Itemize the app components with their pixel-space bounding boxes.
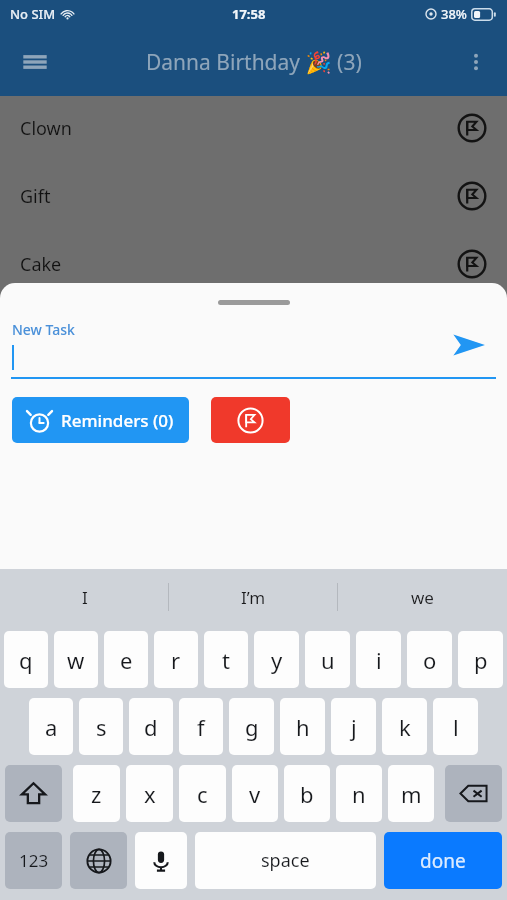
button[interactable]: Reminders (0) <box>12 397 189 443</box>
staticText: l <box>453 712 459 742</box>
button[interactable]: Navigation menu <box>8 35 62 89</box>
staticText: z <box>91 779 102 809</box>
staticText: Cake <box>20 252 62 277</box>
button[interactable]: c <box>179 765 226 822</box>
button[interactable]: w <box>54 631 98 688</box>
staticText: Clown <box>20 116 72 141</box>
staticText: h <box>296 712 310 742</box>
button[interactable]: e <box>104 631 148 688</box>
button[interactable]: done <box>384 832 502 889</box>
button[interactable]: Gift <box>0 178 507 214</box>
button[interactable]: Set priority flag <box>211 397 290 443</box>
staticText: 38% <box>441 5 467 23</box>
staticText: f <box>197 712 205 742</box>
staticText: done <box>420 848 466 874</box>
staticText: j <box>351 712 357 742</box>
button[interactable]: x <box>126 765 173 822</box>
button[interactable]: m <box>388 765 434 822</box>
button[interactable]: h <box>280 698 325 755</box>
staticText: m <box>401 779 422 809</box>
button[interactable]: More options <box>451 37 501 87</box>
button[interactable]: Cake <box>0 246 507 282</box>
button[interactable]: l <box>433 698 478 755</box>
button[interactable]: t <box>204 631 248 688</box>
staticText: 17:58 <box>232 5 266 23</box>
button[interactable]: n <box>336 765 382 822</box>
button[interactable]: we <box>338 569 507 625</box>
staticText: e <box>120 645 133 675</box>
button[interactable]: f <box>179 698 223 755</box>
button[interactable]: Change keyboard <box>70 832 127 889</box>
button[interactable]: q <box>4 631 48 688</box>
button[interactable]: I’m <box>169 569 338 625</box>
staticText: w <box>67 645 85 675</box>
button[interactable]: space <box>195 832 376 889</box>
staticText: New Task <box>12 320 75 339</box>
button[interactable]: y <box>254 631 299 688</box>
staticText: I <box>82 586 88 609</box>
staticText: space <box>261 848 310 873</box>
button[interactable]: I <box>0 569 169 625</box>
staticText: 123 <box>19 849 49 872</box>
staticText: b <box>300 779 314 809</box>
staticText: Reminders (0) <box>61 409 174 432</box>
staticText: t <box>222 645 230 675</box>
staticText: Gift <box>20 184 51 209</box>
staticText: I’m <box>241 586 266 609</box>
staticText: c <box>197 779 208 809</box>
staticText: x <box>144 779 156 809</box>
button[interactable]: o <box>407 631 452 688</box>
button[interactable]: r <box>154 631 198 688</box>
staticText: y <box>271 645 283 675</box>
staticText: k <box>399 712 411 742</box>
staticText: s <box>96 712 107 742</box>
button[interactable]: j <box>331 698 376 755</box>
button[interactable]: Send task <box>443 319 495 371</box>
staticText: a <box>45 712 58 742</box>
button[interactable]: p <box>458 631 503 688</box>
button[interactable]: a <box>29 698 73 755</box>
staticText: Danna Birthday 🎉 (3) <box>146 48 362 77</box>
staticText: v <box>249 779 261 809</box>
staticText: i <box>376 645 382 675</box>
staticText: we <box>411 586 434 609</box>
staticText: d <box>144 712 158 742</box>
button[interactable]: Numbers and symbols <box>5 832 62 889</box>
button[interactable]: k <box>382 698 427 755</box>
button[interactable]: Clown <box>0 110 507 146</box>
button[interactable]: s <box>79 698 123 755</box>
staticText: u <box>321 645 335 675</box>
staticText: g <box>245 712 259 742</box>
staticText: q <box>19 645 33 675</box>
staticText: n <box>352 779 366 809</box>
button[interactable]: Backspace <box>445 765 502 822</box>
button[interactable]: v <box>232 765 278 822</box>
button[interactable]: i <box>356 631 401 688</box>
button[interactable]: Voice input <box>135 832 187 889</box>
button[interactable]: z <box>73 765 120 822</box>
button[interactable]: d <box>129 698 173 755</box>
button[interactable]: Shift <box>5 765 62 822</box>
staticText: r <box>171 645 181 675</box>
button[interactable]: g <box>229 698 274 755</box>
staticText: No SIM <box>10 5 56 23</box>
staticText: p <box>474 645 488 675</box>
button[interactable]: b <box>284 765 330 822</box>
button[interactable]: u <box>305 631 350 688</box>
staticText: o <box>423 645 437 675</box>
